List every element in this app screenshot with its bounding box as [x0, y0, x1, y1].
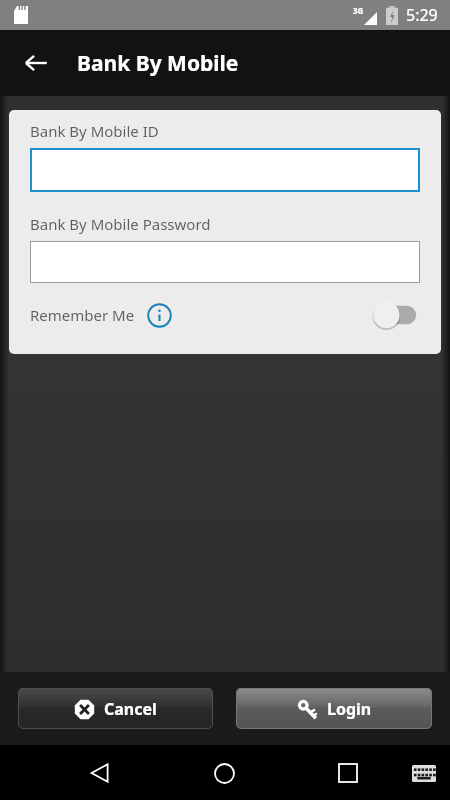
- button[interactable]: Back: [14, 41, 58, 85]
- button[interactable]: Login: [236, 688, 432, 729]
- staticText: Login: [327, 698, 372, 720]
- button[interactable]: Cancel: [18, 688, 213, 729]
- button[interactable]: [30, 241, 420, 283]
- button[interactable]: Keyboard: [402, 751, 446, 795]
- staticText: Bank By Mobile: [77, 49, 239, 78]
- button[interactable]: Information about Remember Me: [145, 301, 173, 329]
- staticText: Cancel: [104, 698, 157, 720]
- button[interactable]: Back: [76, 749, 124, 797]
- staticText: Bank By Mobile ID: [30, 121, 159, 141]
- staticText: 5:29: [406, 4, 438, 26]
- staticText: 3G: [353, 5, 364, 16]
- button[interactable]: [30, 148, 420, 192]
- button[interactable]: Remember Me toggle: [372, 300, 420, 330]
- staticText: Bank By Mobile Password: [30, 214, 211, 234]
- button[interactable]: Home: [200, 749, 248, 797]
- button[interactable]: Recent apps: [324, 749, 372, 797]
- staticText: Remember Me: [30, 305, 135, 325]
